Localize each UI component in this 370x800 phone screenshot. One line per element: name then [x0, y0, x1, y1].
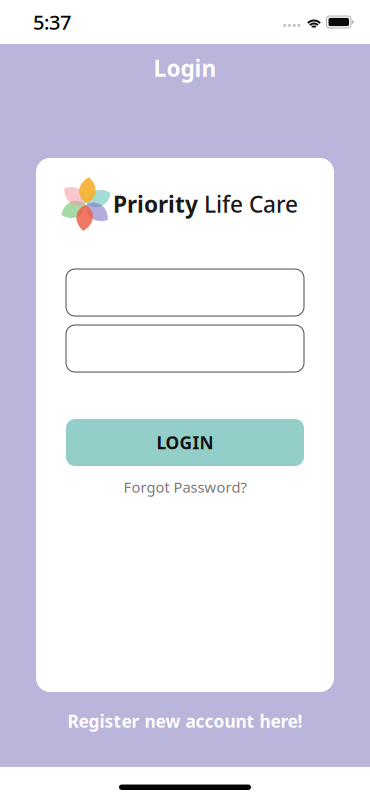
button[interactable]: Forgot Password?	[66, 476, 304, 498]
staticText: Login	[153, 53, 216, 83]
staticText: Register new account here!	[67, 709, 302, 732]
staticText: 5:37	[33, 9, 71, 35]
staticText: LOGIN	[156, 431, 213, 454]
staticText: Priority Life Care	[113, 189, 298, 219]
button[interactable]: LOGIN	[66, 419, 304, 466]
button[interactable]: Register new account here!	[0, 704, 370, 738]
staticText: Forgot Password?	[123, 477, 246, 497]
